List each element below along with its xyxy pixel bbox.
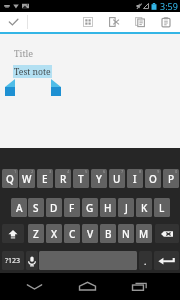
button[interactable]: A [11,198,27,217]
button[interactable]: E [37,169,53,188]
staticText: 5 [85,169,88,174]
staticText: 7 [121,169,124,174]
button[interactable]: Back [17,273,52,300]
staticText: H [104,201,112,215]
button[interactable]: . [139,251,152,270]
button[interactable]: S [28,198,44,217]
button[interactable]: F [64,198,80,217]
staticText: 0 [175,169,178,174]
button[interactable]: Backspace [155,224,179,243]
staticText: 8 [139,169,142,174]
staticText: . [144,255,147,267]
staticText: E [42,172,48,186]
button[interactable]: B [100,224,116,243]
staticText: 9 [157,169,160,174]
button[interactable]: T [73,169,89,188]
staticText: R [60,172,67,186]
staticText: P [168,172,175,186]
button[interactable]: Home [70,273,105,300]
button[interactable]: N [118,224,134,243]
staticText: W [22,172,32,186]
staticText: L [159,201,165,215]
button[interactable]: Cut [101,12,127,32]
staticText: I [133,172,137,186]
button[interactable]: P [163,169,179,188]
button[interactable]: G [82,198,98,217]
button[interactable]: J [118,198,134,217]
button[interactable]: X [46,224,62,243]
staticText: D [50,201,58,215]
button[interactable]: Y [91,169,107,188]
button[interactable]: C [64,224,80,243]
button[interactable]: Z [28,224,44,243]
button[interactable]: M [136,224,152,243]
button[interactable]: D [46,198,62,217]
staticText: 3 [49,169,52,174]
staticText: Q [6,172,14,186]
button[interactable]: H [100,198,116,217]
staticText: U [113,172,121,186]
staticText: K [141,201,148,215]
staticText: Test note [14,66,51,78]
staticText: 6 [103,169,106,174]
button[interactable]: O [145,169,161,188]
staticText: 2 [31,169,34,174]
staticText: C [69,227,76,241]
button[interactable]: Recent apps [123,273,158,300]
button[interactable]: Enter [154,251,179,270]
staticText: ?123 [5,256,21,266]
staticText: 4 [67,169,70,174]
button[interactable]: Voice input [26,251,38,270]
staticText: Z [33,227,39,241]
staticText: T [78,172,84,186]
button[interactable]: U [109,169,125,188]
button[interactable]: ?123 [2,251,24,270]
staticText: A [16,201,23,215]
staticText: Y [96,172,102,186]
staticText: M [139,227,149,241]
button[interactable]: R [55,169,71,188]
button[interactable]: W [19,169,35,188]
button[interactable]: Copy [127,12,153,32]
button[interactable]: Q [2,169,18,188]
staticText: Title [14,47,34,59]
staticText: S [33,201,39,215]
button[interactable]: Paste [153,12,179,32]
staticText: F [69,201,75,215]
button[interactable]: L [154,198,170,217]
button[interactable]: Done [0,12,26,32]
staticText: X [51,227,58,241]
staticText: O [149,172,157,186]
button[interactable]: Shift [2,224,24,243]
staticText: V [87,227,94,241]
staticText: G [86,201,94,215]
staticText: J [125,201,128,215]
button[interactable]: Select all [75,12,101,32]
staticText: B [105,227,112,241]
staticText: 3:59 [160,0,178,12]
button[interactable]: V [82,224,98,243]
button[interactable]: K [136,198,152,217]
staticText: N [122,227,130,241]
button[interactable]: I [127,169,143,188]
staticText: 1 [14,169,17,174]
